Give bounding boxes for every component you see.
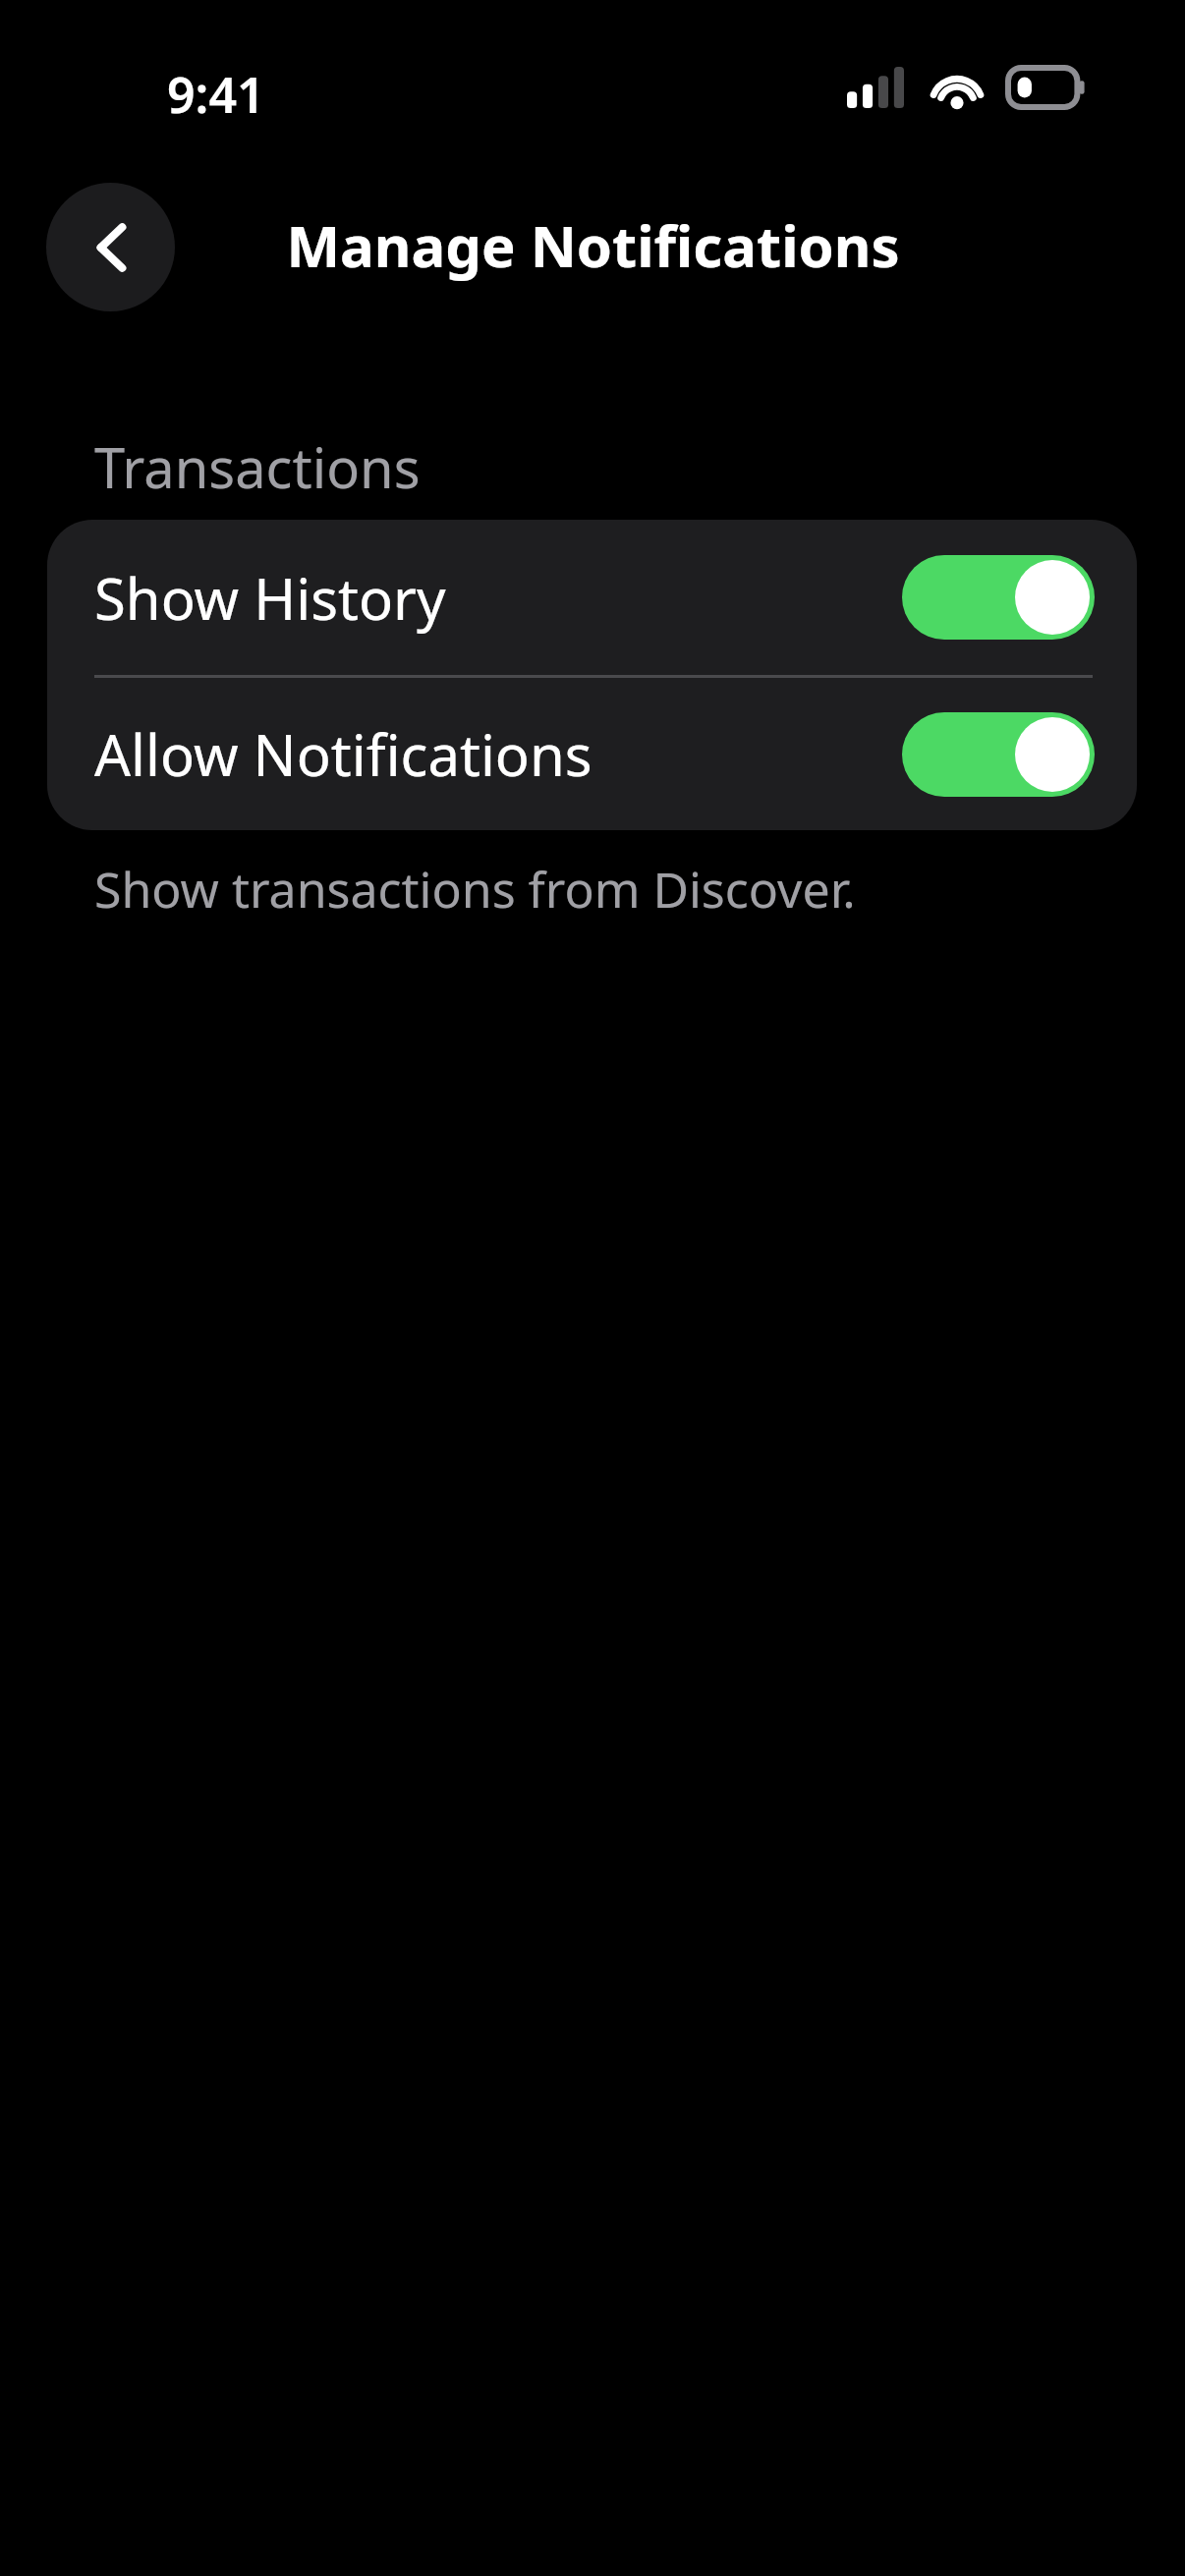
staticText: 9:41 — [167, 61, 265, 128]
button[interactable]: Back — [46, 183, 175, 311]
button[interactable]: Allow Notifications — [47, 678, 1137, 830]
staticText: Show transactions from Discover. — [94, 856, 856, 923]
staticText: Allow Notifications — [94, 715, 592, 793]
staticText: Transactions — [94, 429, 421, 504]
staticText: Show History — [94, 559, 446, 637]
button[interactable]: Show History — [47, 520, 1137, 675]
button[interactable]: Toggle on — [902, 555, 1095, 640]
button[interactable]: Toggle on — [902, 712, 1095, 797]
staticText: Manage Notifications — [286, 206, 900, 284]
